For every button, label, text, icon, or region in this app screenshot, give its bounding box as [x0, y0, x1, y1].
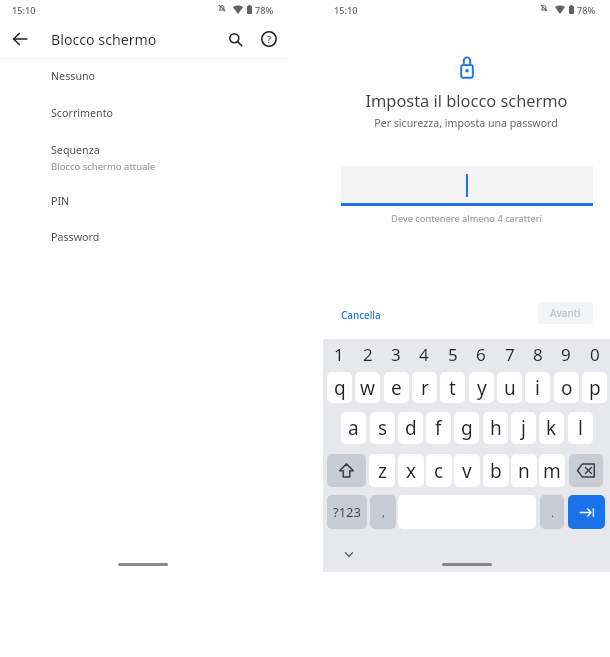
staticText: 15:10: [12, 4, 36, 17]
staticText: m: [543, 458, 561, 484]
staticText: u: [504, 375, 516, 401]
button[interactable]: i: [525, 372, 550, 403]
staticText: v: [462, 458, 472, 484]
staticText: Blocco schermo attuale: [51, 160, 156, 173]
staticText: w: [360, 375, 375, 401]
staticText: 15:10: [334, 4, 358, 17]
button[interactable]: u: [497, 372, 522, 403]
button[interactable]: v: [454, 454, 480, 487]
button[interactable]: 4: [411, 343, 436, 365]
button[interactable]: x: [398, 454, 424, 487]
staticText: 78%: [255, 4, 274, 17]
button[interactable]: z: [369, 454, 395, 487]
staticText: ,: [382, 505, 385, 520]
button[interactable]: m: [539, 454, 565, 487]
staticText: PIN: [51, 194, 70, 209]
staticText: 4: [419, 343, 429, 365]
staticText: d: [405, 415, 417, 441]
button[interactable]: Shift: [327, 454, 366, 487]
button[interactable]: c: [426, 454, 452, 487]
staticText: o: [561, 375, 573, 401]
button[interactable]: Enter: [568, 495, 605, 529]
button[interactable]: Avanti: [538, 302, 593, 324]
button[interactable]: f: [426, 412, 451, 444]
button[interactable]: y: [469, 372, 494, 403]
staticText: t: [449, 375, 456, 401]
button[interactable]: g: [454, 412, 479, 444]
button[interactable]: 3: [383, 343, 408, 365]
staticText: l: [578, 415, 583, 441]
button[interactable]: j: [511, 412, 536, 444]
staticText: Deve contenere almeno 4 caratteri: [391, 212, 542, 225]
button[interactable]: 6: [468, 343, 493, 365]
button[interactable]: Cancella: [335, 303, 387, 325]
button[interactable]: n: [511, 454, 537, 487]
staticText: 7: [505, 343, 515, 365]
button[interactable]: Password: [0, 219, 289, 255]
button[interactable]: e: [384, 372, 409, 403]
staticText: b: [490, 458, 502, 484]
staticText: g: [461, 415, 473, 441]
button[interactable]: o: [554, 372, 579, 403]
staticText: y: [477, 375, 487, 401]
button[interactable]: w: [355, 372, 380, 403]
button[interactable]: Scorrimento: [0, 95, 289, 131]
button[interactable]: ,: [370, 495, 396, 529]
button[interactable]: Blocco schermo: [44, 24, 157, 54]
button[interactable]: 0: [582, 343, 607, 365]
staticText: i: [535, 375, 540, 401]
staticText: 1: [334, 343, 344, 365]
button[interactable]: Sequenza: [0, 133, 289, 183]
staticText: Nessuno: [51, 69, 96, 84]
staticText: Per sicurezza, imposta una password: [374, 116, 558, 130]
button[interactable]: Hide keyboard: [339, 544, 359, 564]
button[interactable]: 2: [355, 343, 380, 365]
staticText: p: [589, 375, 601, 401]
button[interactable]: 5: [440, 343, 465, 365]
button[interactable]: Help: [253, 23, 285, 55]
staticText: 8: [533, 343, 543, 365]
staticText: n: [518, 458, 530, 484]
staticText: 3: [391, 343, 401, 365]
button[interactable]: 1: [326, 343, 351, 365]
button[interactable]: s: [370, 412, 395, 444]
staticText: k: [546, 415, 557, 441]
button[interactable]: ?123: [327, 495, 367, 529]
button[interactable]: Search: [219, 23, 251, 55]
staticText: Avanti: [550, 306, 581, 320]
button[interactable]: .: [540, 495, 564, 529]
button[interactable]: r: [412, 372, 437, 403]
staticText: h: [490, 415, 502, 441]
button[interactable]: q: [327, 372, 352, 403]
button[interactable]: l: [568, 412, 593, 444]
button[interactable]: PIN: [0, 183, 289, 219]
staticText: 0: [590, 343, 600, 365]
staticText: f: [435, 415, 442, 441]
button[interactable]: d: [398, 412, 423, 444]
staticText: 2: [363, 343, 373, 365]
button[interactable]: h: [483, 412, 508, 444]
staticText: e: [391, 375, 402, 401]
button[interactable]: a: [341, 412, 366, 444]
button[interactable]: Backspace: [569, 454, 603, 487]
button[interactable]: k: [539, 412, 564, 444]
staticText: r: [421, 375, 429, 401]
staticText: q: [334, 375, 346, 401]
button[interactable]: 8: [525, 343, 550, 365]
staticText: ?123: [333, 503, 361, 521]
staticText: Scorrimento: [51, 106, 113, 121]
staticText: z: [378, 458, 387, 484]
staticText: c: [434, 458, 444, 484]
button[interactable]: 9: [553, 343, 578, 365]
staticText: j: [521, 415, 526, 441]
button[interactable]: p: [582, 372, 607, 403]
button[interactable]: Back: [4, 23, 36, 55]
staticText: .: [551, 505, 554, 520]
staticText: a: [348, 415, 359, 441]
button[interactable]: t: [440, 372, 465, 403]
button[interactable]: b: [483, 454, 509, 487]
staticText: Blocco schermo: [51, 30, 157, 49]
button[interactable]: 7: [497, 343, 522, 365]
button[interactable]: Nessuno: [0, 58, 289, 94]
